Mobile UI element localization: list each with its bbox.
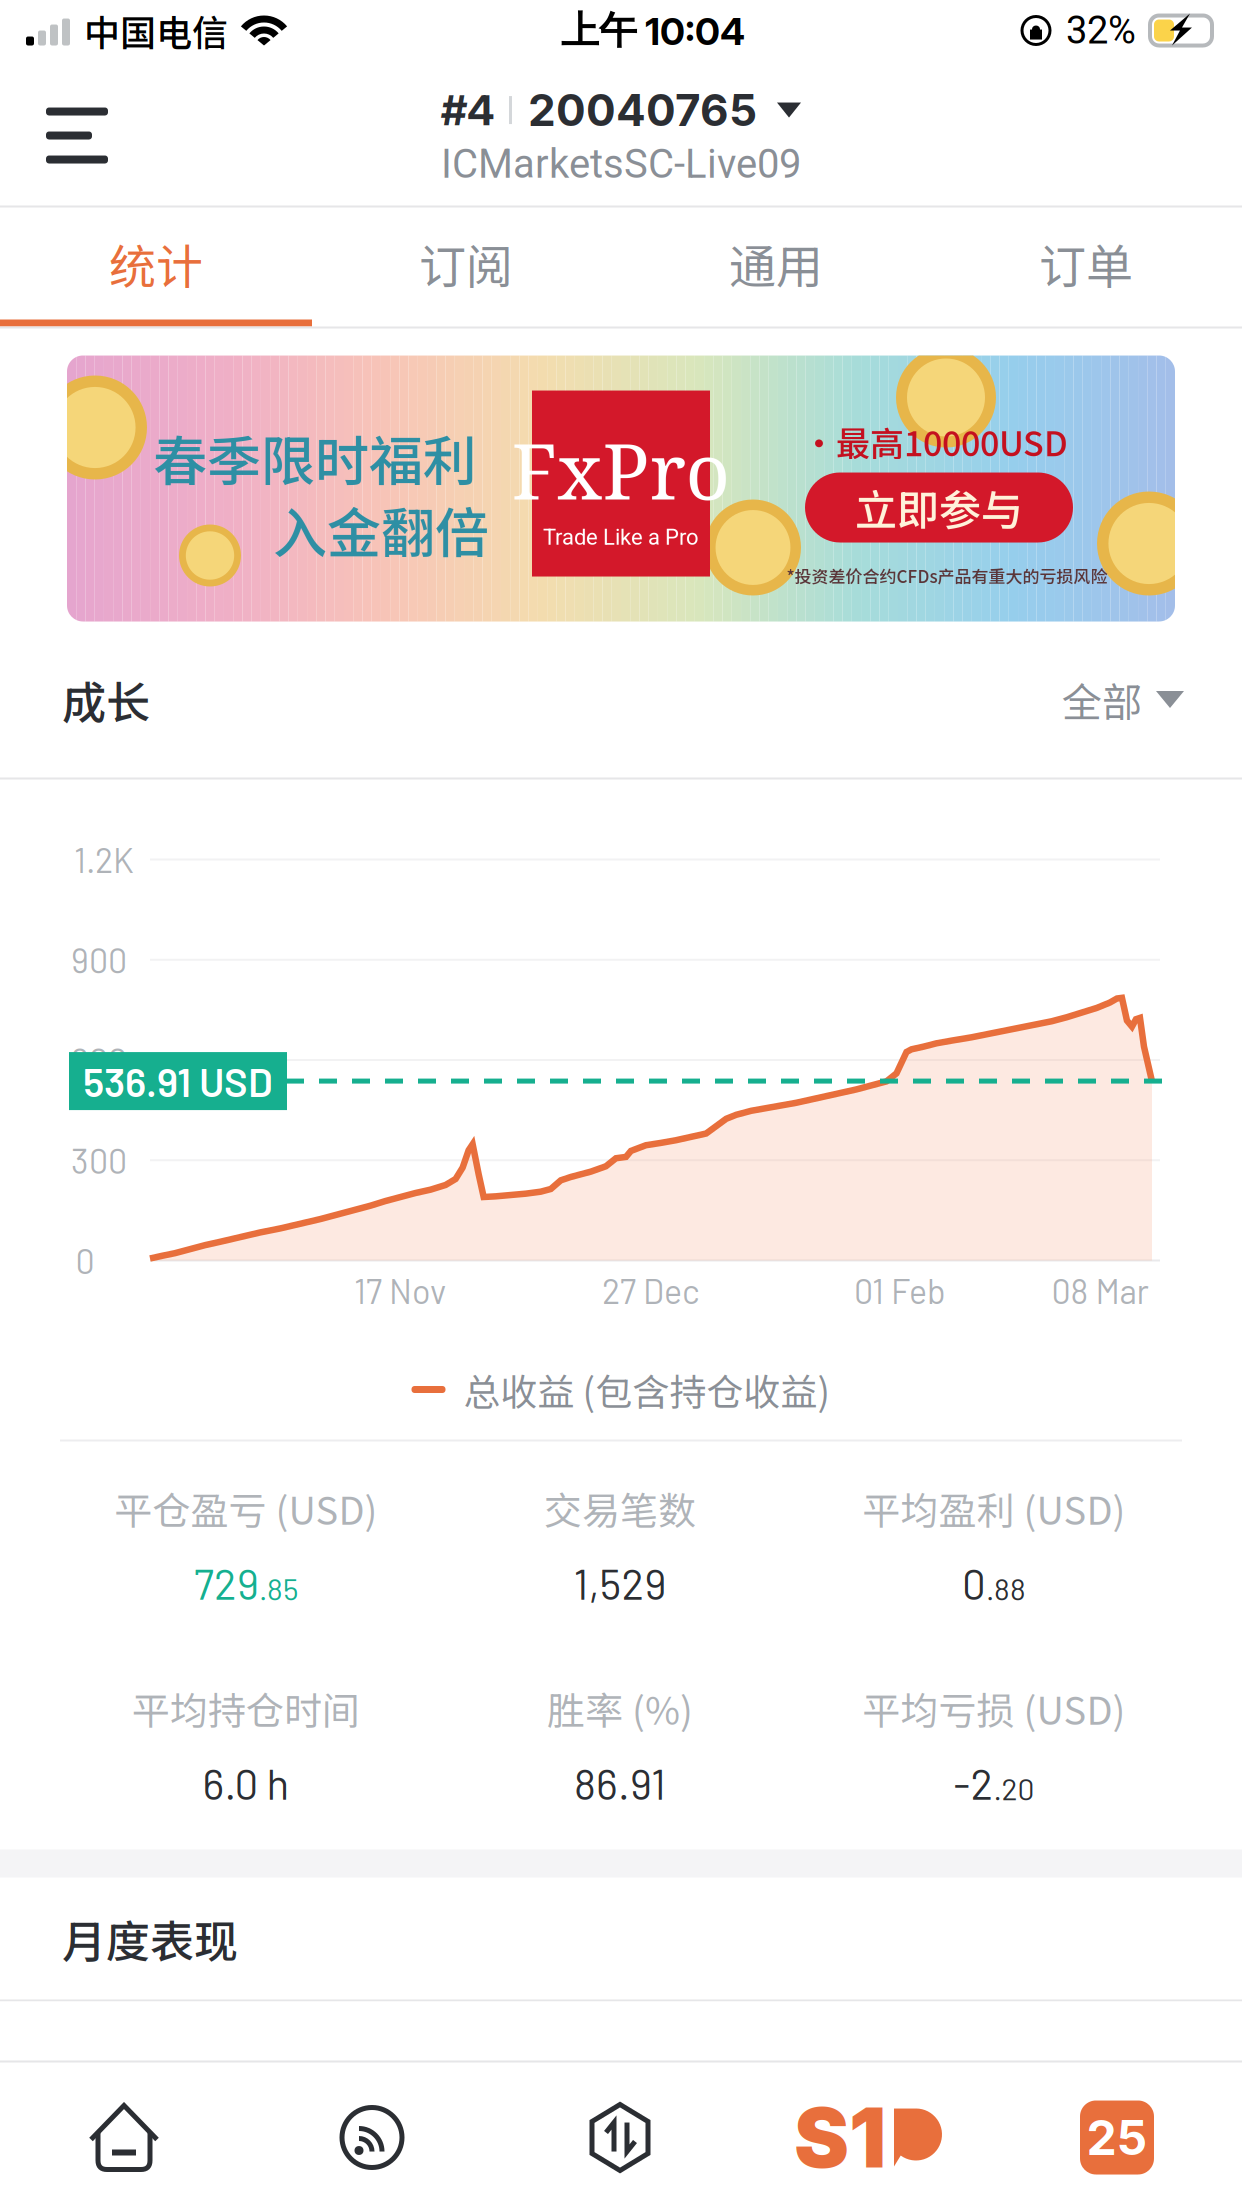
- staticText: 平均盈利 (USD): [862, 1481, 1125, 1536]
- staticText: FxPro: [511, 417, 730, 522]
- staticText: 729: [194, 1558, 259, 1608]
- staticText: 总收益 (包含持仓收益): [463, 1363, 830, 1416]
- staticText: 成长: [62, 668, 150, 731]
- button[interactable]: More: [992, 2062, 1242, 2208]
- staticText: 平仓盈亏 (USD): [114, 1481, 377, 1536]
- staticText: 通用: [729, 229, 823, 298]
- button[interactable]: 全部: [1062, 670, 1184, 728]
- staticText: .85: [259, 1570, 298, 1606]
- staticText: 春季限时福利: [153, 418, 477, 497]
- staticText: 27 Dec: [602, 1270, 700, 1311]
- staticText: 1.2K: [74, 839, 134, 880]
- staticText: 32%: [1066, 8, 1136, 53]
- staticText: 中国电信: [84, 4, 228, 56]
- button[interactable]: Signals: [248, 2062, 496, 2208]
- staticText: 86.91: [574, 1758, 666, 1808]
- staticText: 08 Mar: [1051, 1270, 1148, 1311]
- staticText: .88: [986, 1570, 1026, 1606]
- staticText: 订阅: [419, 229, 513, 298]
- staticText: 20040765: [528, 83, 757, 137]
- staticText: *投资差价合约CFDs产品有重大的亏损风险: [786, 563, 1107, 588]
- button[interactable]: 订阅: [311, 207, 621, 319]
- staticText: 入金翻倍: [273, 490, 489, 569]
- staticText: ICMarketsSC-Live09: [441, 141, 801, 188]
- staticText: 统计: [109, 229, 203, 298]
- button[interactable]: 订单: [931, 207, 1241, 319]
- button[interactable]: Promotion: [67, 355, 1175, 621]
- staticText: 全部: [1062, 670, 1142, 728]
- staticText: 600: [71, 1040, 127, 1080]
- staticText: 月度表现: [62, 1907, 238, 1970]
- staticText: 6.0 h: [202, 1758, 289, 1808]
- staticText: 平均持仓时间: [132, 1681, 360, 1736]
- staticText: 300: [71, 1140, 127, 1181]
- staticText: 订单: [1039, 229, 1133, 298]
- staticText: Trade Like a Pro: [543, 524, 699, 550]
- button[interactable]: Menu: [0, 65, 138, 205]
- staticText: 胜率 (%): [547, 1681, 693, 1736]
- staticText: 17 Nov: [354, 1270, 446, 1311]
- staticText: 1,529: [573, 1558, 666, 1608]
- staticText: 25: [1086, 2108, 1147, 2167]
- staticText: 立即参与: [855, 477, 1023, 538]
- staticText: S1: [794, 2087, 886, 2187]
- button[interactable]: 统计: [1, 207, 311, 319]
- staticText: 900: [71, 939, 127, 980]
- staticText: #4: [441, 85, 495, 135]
- staticText: 平均亏损 (USD): [862, 1681, 1125, 1736]
- button[interactable]: Trade: [496, 2062, 744, 2208]
- staticText: 0: [962, 1558, 986, 1608]
- staticText: 536.91 USD: [83, 1057, 273, 1105]
- staticText: 0: [75, 1240, 94, 1281]
- staticText: .20: [993, 1770, 1034, 1806]
- staticText: 交易笔数: [544, 1481, 696, 1536]
- staticText: 01 Feb: [854, 1270, 946, 1311]
- button[interactable]: Broker: [744, 2062, 992, 2208]
- staticText: -2: [953, 1758, 993, 1808]
- button[interactable]: 通用: [621, 207, 931, 319]
- staticText: 上午 10:04: [561, 7, 745, 54]
- staticText: ·最高10000USD: [802, 417, 1068, 466]
- button[interactable]: Home: [0, 2062, 248, 2208]
